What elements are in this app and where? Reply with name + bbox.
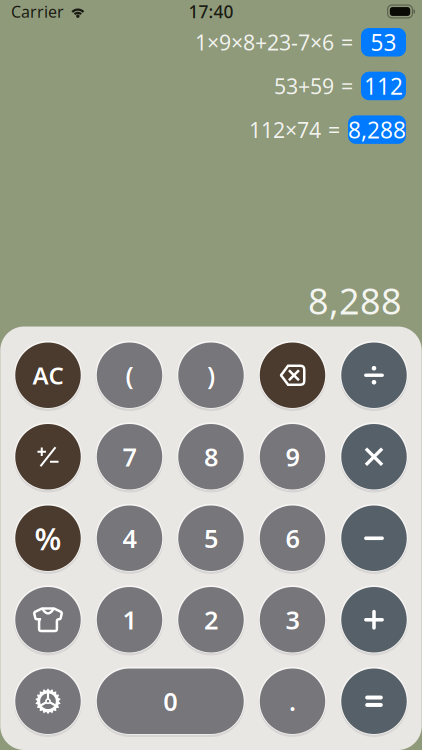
staticText: 4 — [122, 521, 136, 555]
button[interactable]: ) — [178, 342, 244, 408]
staticText: = — [328, 115, 340, 144]
button[interactable]: 3 — [260, 587, 325, 652]
staticText: 8,288 — [308, 277, 402, 324]
button[interactable]: Equals — [341, 668, 407, 734]
staticText: 2 — [204, 603, 218, 636]
staticText: 6 — [285, 521, 299, 555]
button[interactable]: Minus — [341, 505, 407, 571]
button[interactable]: Divide — [341, 342, 407, 408]
staticText: 7 — [122, 440, 136, 473]
button[interactable]: 6 — [260, 505, 325, 571]
button[interactable]: Multiply — [341, 424, 407, 489]
button[interactable]: Plus — [341, 587, 407, 652]
staticText: 53+59 — [274, 72, 334, 100]
button[interactable]: 4 — [97, 505, 162, 571]
staticText: 112 — [364, 71, 403, 101]
staticText: 1 — [122, 603, 136, 636]
staticText: 9 — [285, 440, 299, 473]
button[interactable]: 0 — [97, 668, 244, 734]
button[interactable]: 2 — [178, 587, 244, 652]
staticText: . — [289, 684, 296, 718]
staticText: 0 — [163, 684, 177, 718]
button[interactable]: AC — [15, 342, 81, 408]
staticText: 5 — [204, 521, 218, 555]
staticText: 53 — [370, 27, 396, 57]
button[interactable]: 5 — [178, 505, 244, 571]
staticText: AC — [32, 359, 63, 391]
button[interactable]: 8 — [178, 424, 244, 489]
staticText: = — [341, 28, 353, 56]
button[interactable]: ( — [97, 342, 162, 408]
staticText: ) — [207, 358, 215, 392]
staticText: 8,288 — [348, 115, 406, 145]
staticText: 17:40 — [188, 0, 233, 23]
button[interactable]: Plus or minus — [15, 424, 81, 489]
staticText: 3 — [285, 603, 299, 636]
staticText: ( — [125, 358, 133, 392]
staticText: 112×74 — [249, 115, 321, 144]
button[interactable]: 7 — [97, 424, 162, 489]
button[interactable]: 1 — [97, 587, 162, 652]
staticText: 8 — [204, 440, 218, 473]
staticText: = — [341, 72, 353, 100]
staticText: 1×9×8+23-7×6 — [195, 28, 334, 56]
button[interactable]: Delete — [260, 342, 325, 408]
button[interactable]: . — [260, 668, 325, 734]
staticText: Carrier — [11, 1, 64, 22]
button[interactable]: % — [15, 505, 81, 571]
button[interactable]: Themes — [15, 587, 81, 652]
button[interactable]: Settings — [15, 668, 81, 734]
button[interactable]: 9 — [260, 424, 325, 489]
staticText: % — [34, 518, 61, 559]
